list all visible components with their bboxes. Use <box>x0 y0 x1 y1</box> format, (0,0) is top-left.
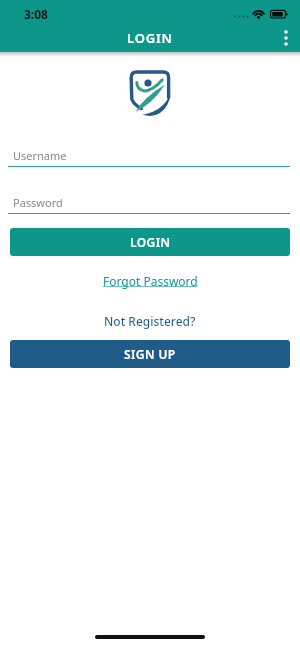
staticText: LOGIN <box>127 29 173 47</box>
staticText: Forgot Password <box>103 273 198 289</box>
button[interactable]: Password <box>8 195 290 214</box>
button[interactable] <box>272 24 300 52</box>
button[interactable]: Username <box>8 148 290 167</box>
button[interactable]: LOGIN <box>10 228 290 256</box>
staticText: LOGIN <box>130 234 171 250</box>
staticText: Password <box>13 195 63 210</box>
staticText: Not Registered? <box>104 313 196 329</box>
staticText: SIGN UP <box>124 346 176 362</box>
staticText: 3:08 <box>24 6 48 22</box>
staticText: Username <box>13 148 67 163</box>
button[interactable]: SIGN UP <box>10 340 290 368</box>
button[interactable]: Forgot Password <box>103 273 198 289</box>
